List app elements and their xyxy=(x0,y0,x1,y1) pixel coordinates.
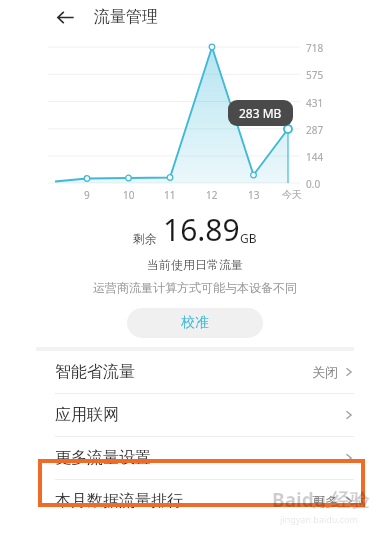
staticText: 智能省流量 xyxy=(55,362,312,382)
staticText: 应用联网 xyxy=(55,405,344,425)
staticText: 287 xyxy=(306,123,324,137)
staticText: 575 xyxy=(306,68,324,82)
staticText: jingyan.baidu.com xyxy=(280,513,358,525)
staticText: 718 xyxy=(306,41,324,55)
staticText: 9 xyxy=(84,188,90,202)
button[interactable]: 智能省流量 xyxy=(0,351,390,393)
button[interactable]: Back xyxy=(50,2,80,32)
staticText: 本月数据流量排行 xyxy=(55,491,312,511)
staticText: 13 xyxy=(248,188,260,202)
staticText: 更多流量设置 xyxy=(55,448,344,468)
staticText: 12 xyxy=(206,188,218,202)
button[interactable]: 校准 xyxy=(127,308,263,338)
staticText: Baidu 经验 xyxy=(272,487,369,513)
staticText: 运营商流量计算方式可能与本设备不同 xyxy=(93,280,297,295)
staticText: 校准 xyxy=(181,314,209,332)
staticText: 更多 xyxy=(312,493,338,509)
button[interactable]: 更多流量设置 xyxy=(0,437,390,479)
staticText: 0.0 xyxy=(306,177,321,191)
staticText: 当前使用日常流量 xyxy=(147,257,243,272)
button[interactable]: 本月数据流量排行 xyxy=(0,480,390,522)
staticText: 16.89 xyxy=(163,209,240,250)
staticText: 11 xyxy=(164,188,176,202)
staticText: 144 xyxy=(306,150,324,164)
staticText: 10 xyxy=(123,188,135,202)
staticText: 关闭 xyxy=(312,364,338,380)
staticText: 283 MB xyxy=(239,105,282,121)
button[interactable]: 应用联网 xyxy=(0,394,390,436)
staticText: 今天 xyxy=(282,188,302,201)
staticText: 剩余 xyxy=(133,231,157,246)
staticText: 流量管理 xyxy=(94,7,158,27)
staticText: 431 xyxy=(306,96,324,110)
staticText: GB xyxy=(240,230,257,246)
